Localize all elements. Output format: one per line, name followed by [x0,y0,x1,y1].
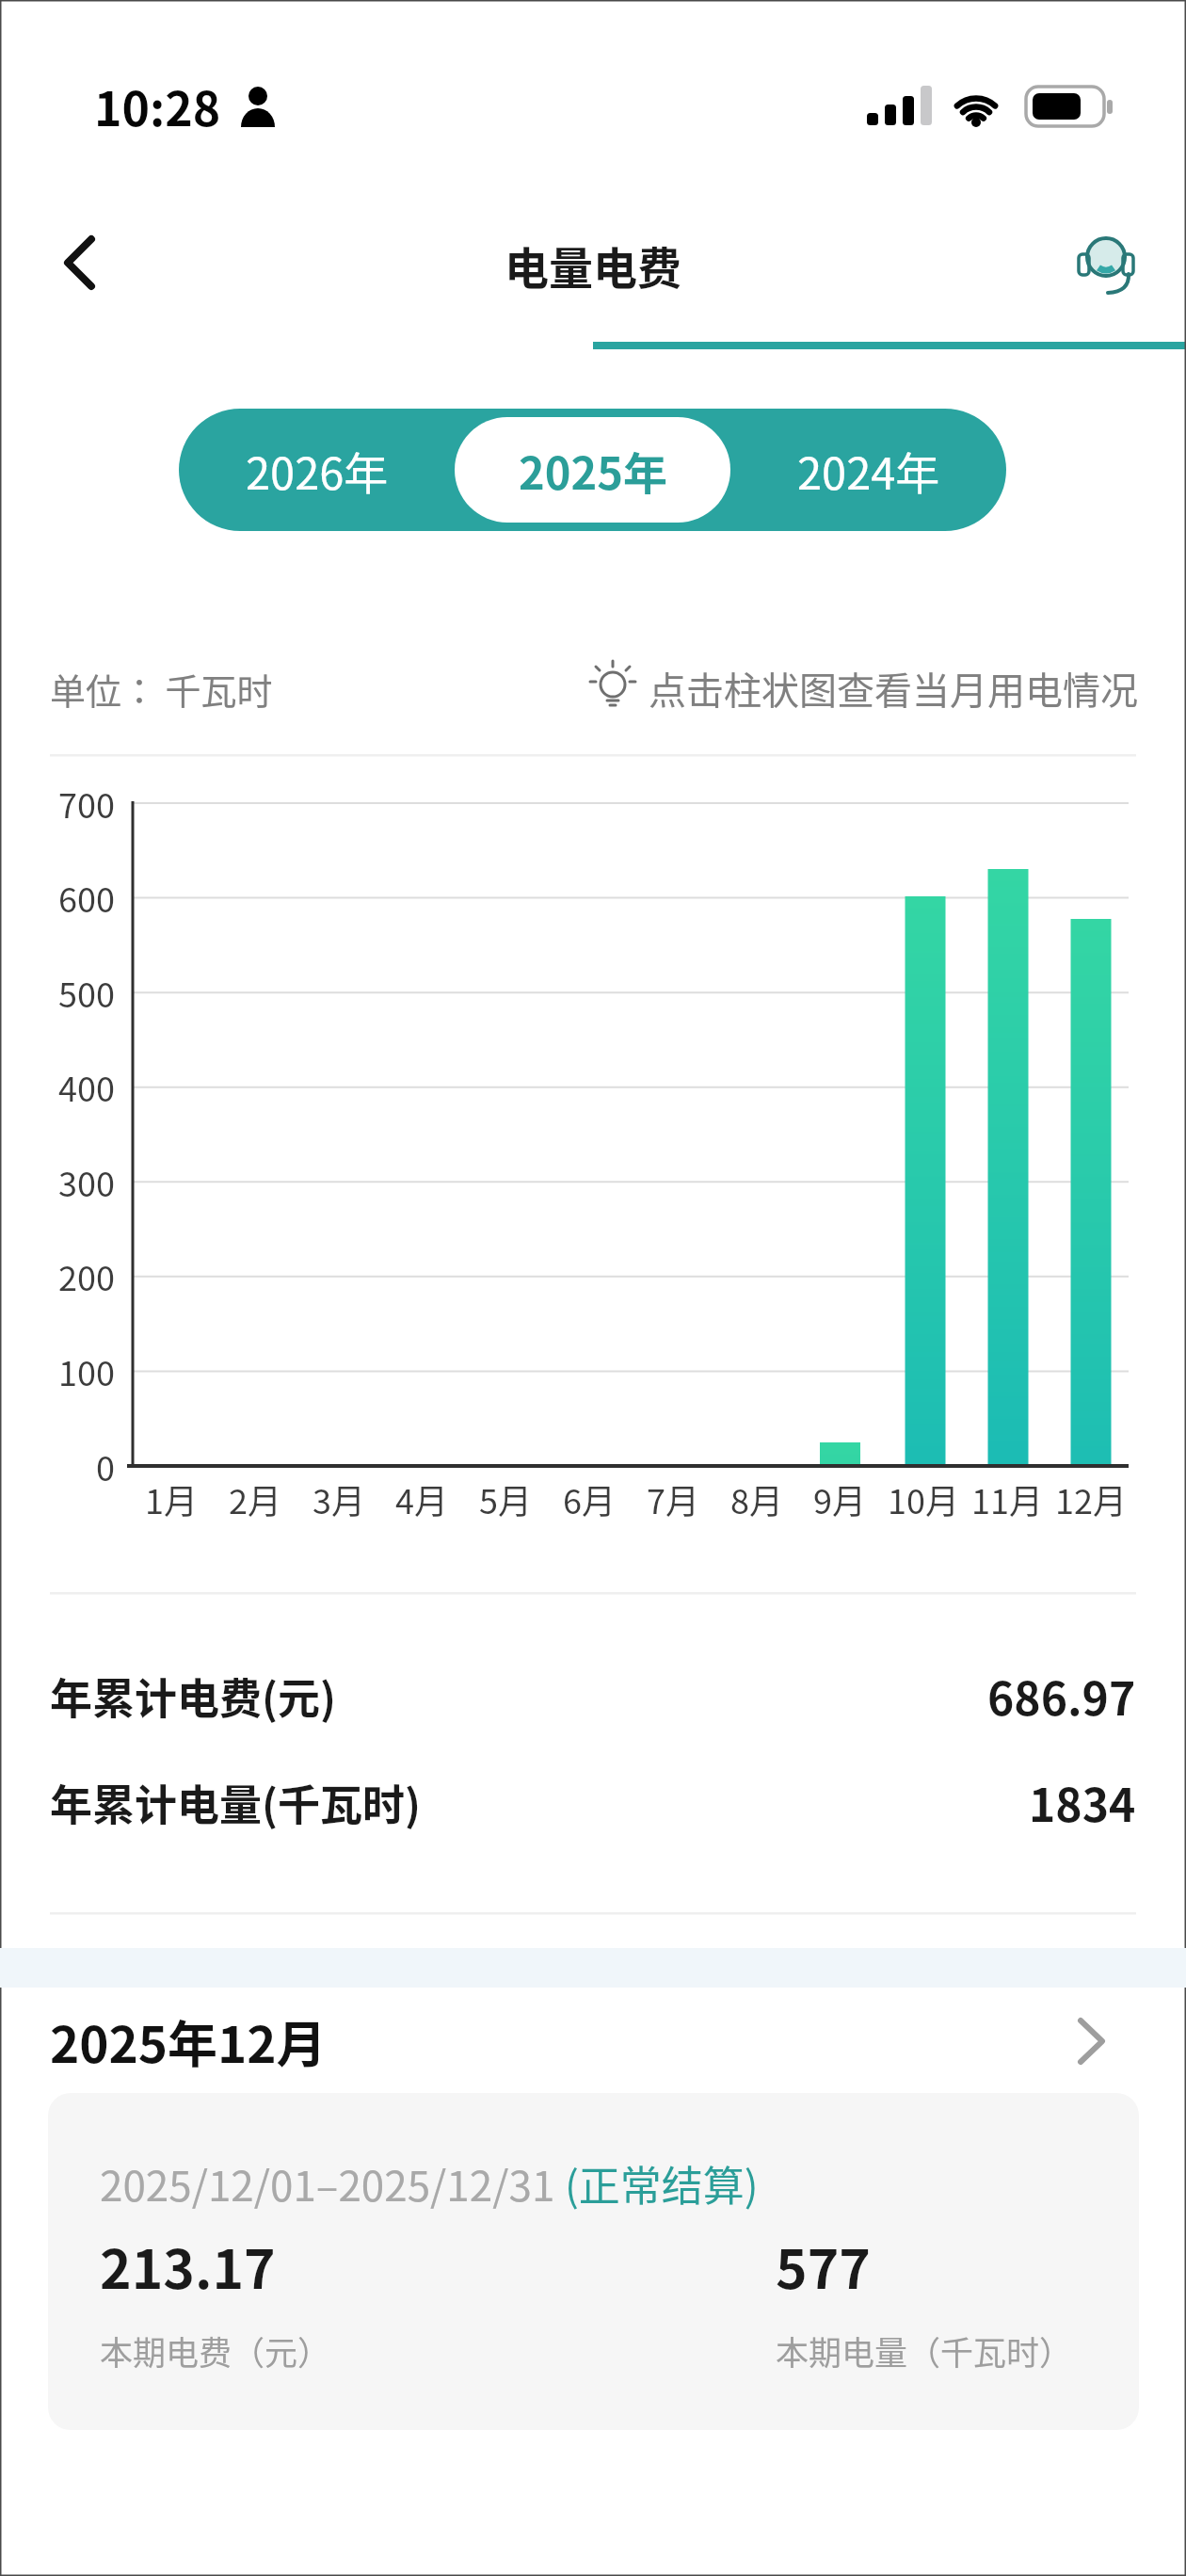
staticText: 单位： 千瓦时 [50,663,273,715]
staticText: 1月 [145,1474,198,1523]
staticText: 400 [58,1062,115,1111]
staticText: 3月 [313,1474,365,1523]
staticText: 2026年 [246,438,389,502]
staticText: 2024年 [797,438,940,502]
staticText: 10月 [888,1474,959,1523]
staticText: 1834 [1029,1769,1136,1835]
staticText: 100 [58,1346,115,1395]
button[interactable]: 2025/12/01–2025/12/31 [48,2093,1139,2430]
button[interactable] [1068,221,1144,297]
staticText: 2025年12月 [50,2005,327,2078]
staticText: 电量电费 [505,233,681,289]
button[interactable]: 2026年 [179,409,455,531]
staticText: 年累计电量(千瓦时) [50,1772,422,1833]
staticText: 213.17 [100,2227,276,2305]
staticText: (正常结算) [565,2153,759,2214]
staticText: 700 [58,779,115,828]
staticText: 9月 [813,1474,866,1523]
staticText: 本期电量（千瓦时） [776,2326,1073,2375]
staticText: 7月 [647,1474,699,1523]
staticText: 6月 [563,1474,616,1523]
staticText: 600 [58,873,115,922]
button[interactable] [47,226,122,301]
button[interactable]: 2025年 [455,417,730,523]
staticText: 10:28 [94,72,221,139]
staticText: 本期电费（元） [100,2326,331,2375]
button[interactable] [0,2004,1186,2079]
staticText: 2025/12/01–2025/12/31 [100,2153,565,2214]
staticText: 577 [776,2227,871,2305]
staticText: 5月 [479,1474,532,1523]
staticText: 300 [58,1157,115,1206]
staticText: 点击柱状图查看当月用电情况 [649,661,1138,716]
staticText: 8月 [730,1474,783,1523]
staticText: 200 [58,1251,115,1300]
staticText: 12月 [1055,1474,1127,1523]
button[interactable]: 2024年 [730,409,1006,531]
staticText: 2月 [229,1474,281,1523]
staticText: 4月 [395,1474,448,1523]
staticText: 500 [58,968,115,1017]
staticText: 年累计电费(元) [50,1666,337,1727]
staticText: 686.97 [987,1663,1136,1729]
staticText: 2025年 [519,438,667,502]
staticText: 0 [96,1441,115,1490]
staticText: 11月 [971,1474,1043,1523]
